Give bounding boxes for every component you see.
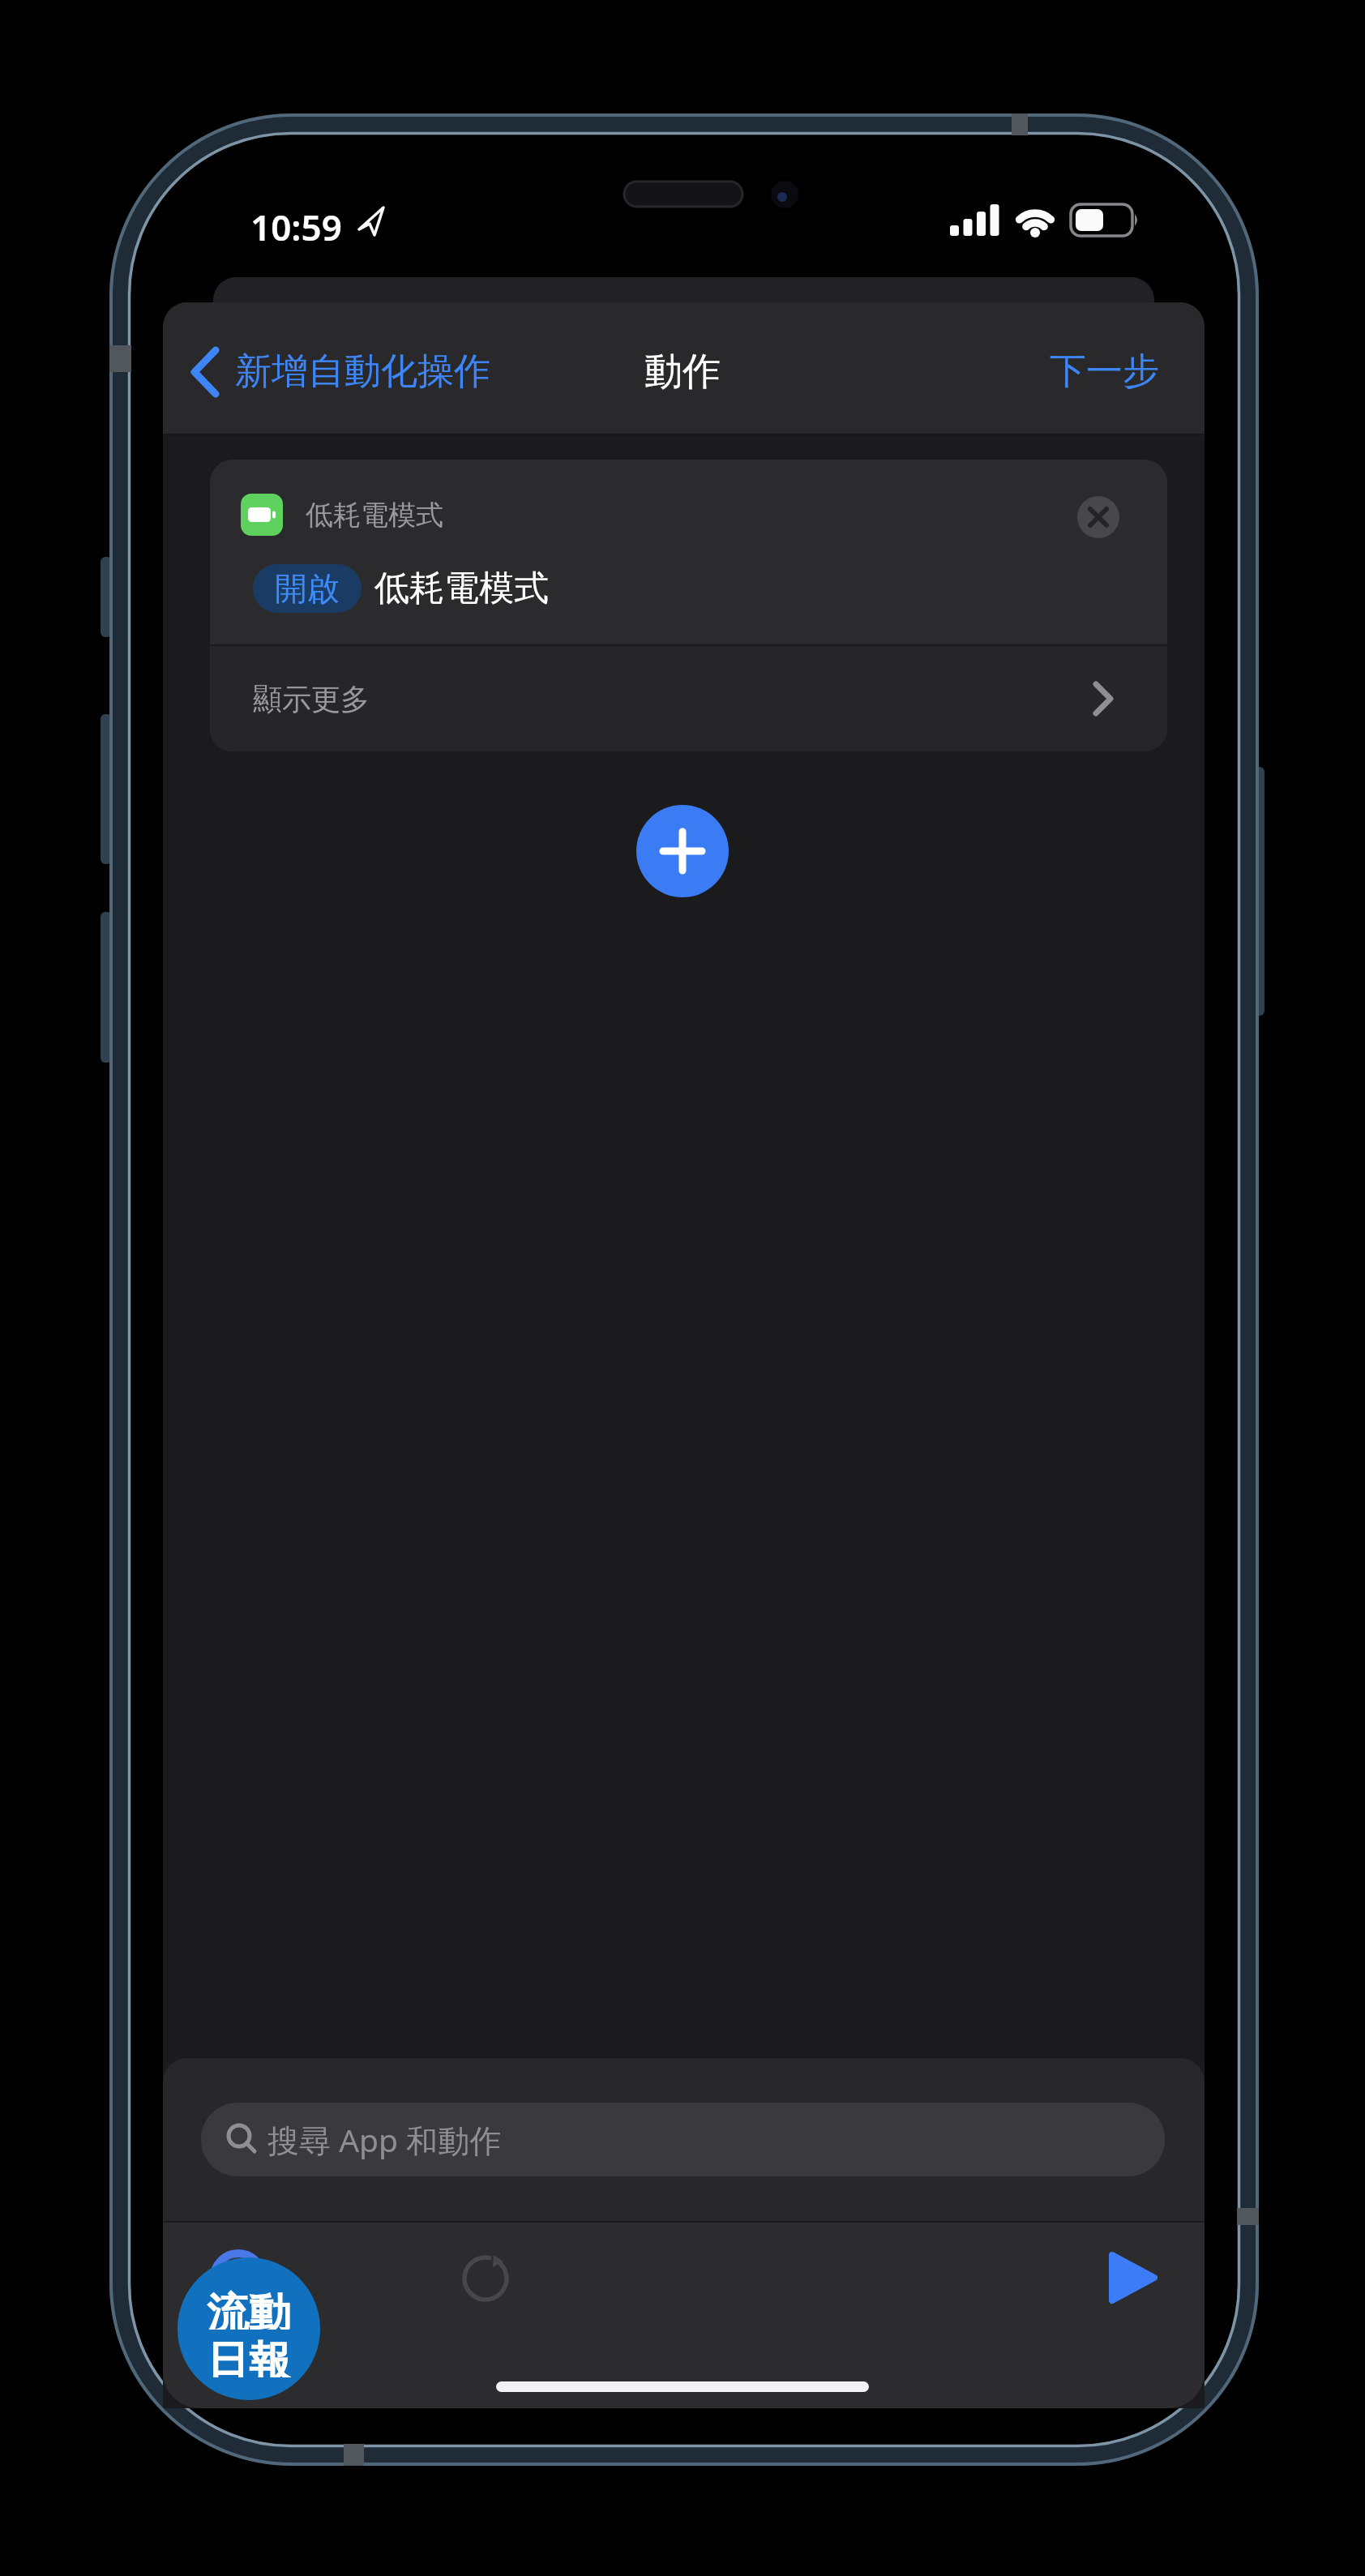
button[interactable]: 下一步 — [1038, 332, 1159, 410]
button[interactable] — [461, 2254, 510, 2303]
staticText: 低耗電模式 — [374, 567, 549, 610]
staticText: 10:59 — [250, 203, 342, 246]
button[interactable]: 開啟 — [253, 564, 362, 613]
button[interactable]: 搜尋 App 和動作 — [201, 2103, 1165, 2176]
staticText: 下一步 — [1050, 349, 1159, 395]
staticText: 日報 — [207, 2335, 291, 2377]
staticText: 顯示更多 — [253, 681, 370, 717]
button[interactable] — [1099, 2255, 1156, 2313]
button[interactable] — [1077, 496, 1119, 538]
staticText: 新增自動化操作 — [235, 349, 490, 395]
staticText: 動作 — [644, 348, 721, 396]
button[interactable]: 新增自動化操作 — [182, 332, 592, 410]
button[interactable]: 顯示更多 — [210, 646, 1167, 751]
button[interactable] — [636, 805, 729, 897]
staticText: 低耗電模式 — [306, 498, 443, 533]
staticText: 搜尋 App 和動作 — [267, 2118, 502, 2161]
staticText: 開啟 — [275, 568, 340, 609]
staticText: 流動 — [207, 2287, 291, 2330]
button[interactable]: 流動 — [178, 2240, 320, 2400]
